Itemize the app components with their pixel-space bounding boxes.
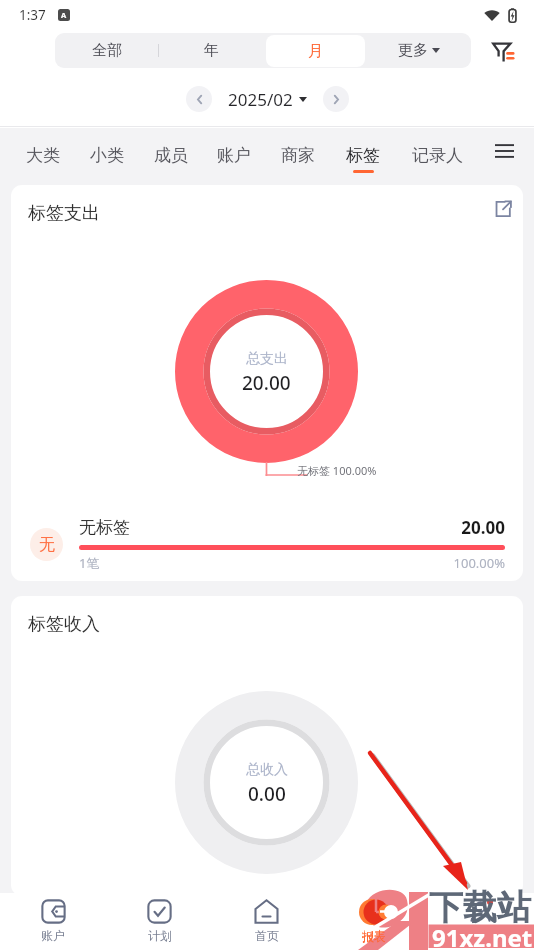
button[interactable]: 商家 xyxy=(272,128,324,180)
staticText: 0.00 xyxy=(248,781,286,807)
staticText: 小类 xyxy=(90,145,124,166)
staticText: 1笔 xyxy=(79,554,100,572)
staticText: A xyxy=(61,10,67,20)
button[interactable]: 全部 xyxy=(55,33,159,68)
staticText: 无标签 100.00% xyxy=(297,463,377,478)
button[interactable]: 账户 xyxy=(0,893,106,950)
staticText: 标签支出 xyxy=(28,202,100,225)
button[interactable]: 大类 xyxy=(17,128,69,180)
button[interactable]: 报表 xyxy=(320,893,427,950)
staticText: 报表 xyxy=(362,929,386,944)
staticText: 1:37 xyxy=(19,6,46,24)
staticText: 账户 xyxy=(217,145,251,166)
button[interactable]: Next month xyxy=(323,86,349,112)
staticText: 100.00% xyxy=(441,554,505,572)
button[interactable]: 2025/02 xyxy=(228,88,307,111)
staticText: 全部 xyxy=(92,41,122,60)
staticText: 月 xyxy=(308,42,323,61)
staticText: 无标签 xyxy=(79,517,130,538)
button[interactable]: Filter xyxy=(482,30,522,70)
staticText: 首页 xyxy=(255,928,279,943)
staticText: 报表 xyxy=(362,928,386,943)
button[interactable]: 记录人 xyxy=(403,128,471,180)
button[interactable]: Previous month xyxy=(186,86,212,112)
button[interactable]: 月 xyxy=(266,35,365,67)
button[interactable]: 小类 xyxy=(81,128,133,180)
staticText: 更多 xyxy=(398,41,428,60)
staticText: 总收入 xyxy=(246,761,288,779)
staticText: 标签收入 xyxy=(28,613,100,636)
button[interactable]: 更多 xyxy=(367,33,471,68)
button[interactable]: Open detail xyxy=(483,189,523,229)
staticText: 年 xyxy=(204,41,219,60)
button[interactable]: 成员 xyxy=(145,128,197,180)
button[interactable]: 计划 xyxy=(106,893,213,950)
staticText: 记录人 xyxy=(412,145,463,166)
staticText: 20.00 xyxy=(451,516,505,539)
button[interactable] xyxy=(263,33,367,68)
button[interactable]: 无 xyxy=(11,491,523,581)
staticText: 20.00 xyxy=(242,370,291,396)
staticText: 总支出 xyxy=(246,350,288,368)
staticText: 大类 xyxy=(26,145,60,166)
button[interactable]: 我的 xyxy=(427,893,534,950)
staticText: 商家 xyxy=(281,145,315,166)
button[interactable]: 标签 xyxy=(337,128,389,180)
button[interactable]: 首页 xyxy=(213,893,320,950)
staticText: 2025/02 xyxy=(228,88,293,111)
staticText: 91xz.net xyxy=(432,921,533,950)
button[interactable]: 账户 xyxy=(208,128,260,180)
button[interactable]: More tabs xyxy=(485,132,523,170)
staticText: 计划 xyxy=(148,928,172,943)
staticText: 我的 xyxy=(469,928,493,943)
staticText: 标签 xyxy=(346,145,380,166)
button[interactable]: 年 xyxy=(159,33,263,68)
staticText: 下载站 xyxy=(429,886,531,929)
staticText: 成员 xyxy=(154,145,188,166)
staticText: 账户 xyxy=(41,928,65,943)
staticText: 无 xyxy=(39,535,55,555)
